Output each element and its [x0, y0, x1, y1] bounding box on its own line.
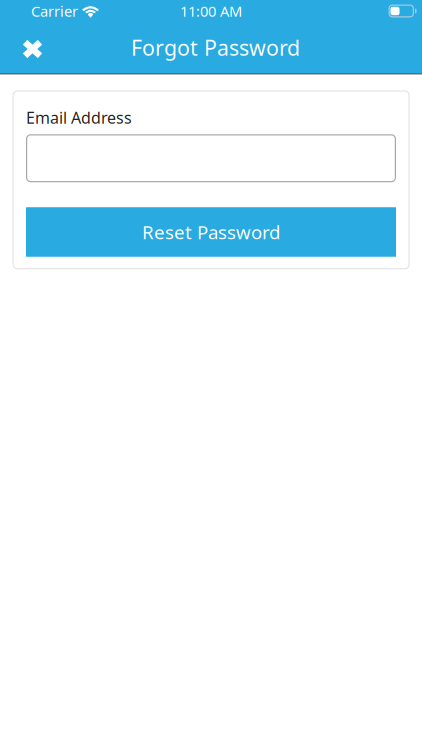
staticText: Forgot Password — [131, 33, 300, 62]
staticText: Reset Password — [142, 220, 280, 244]
staticText: 11:00 AM — [180, 1, 242, 21]
staticText: Carrier — [31, 1, 78, 21]
button[interactable]: Reset Password — [26, 207, 396, 257]
staticText: Email Address — [26, 107, 132, 128]
button[interactable]: Close — [10, 24, 54, 71]
